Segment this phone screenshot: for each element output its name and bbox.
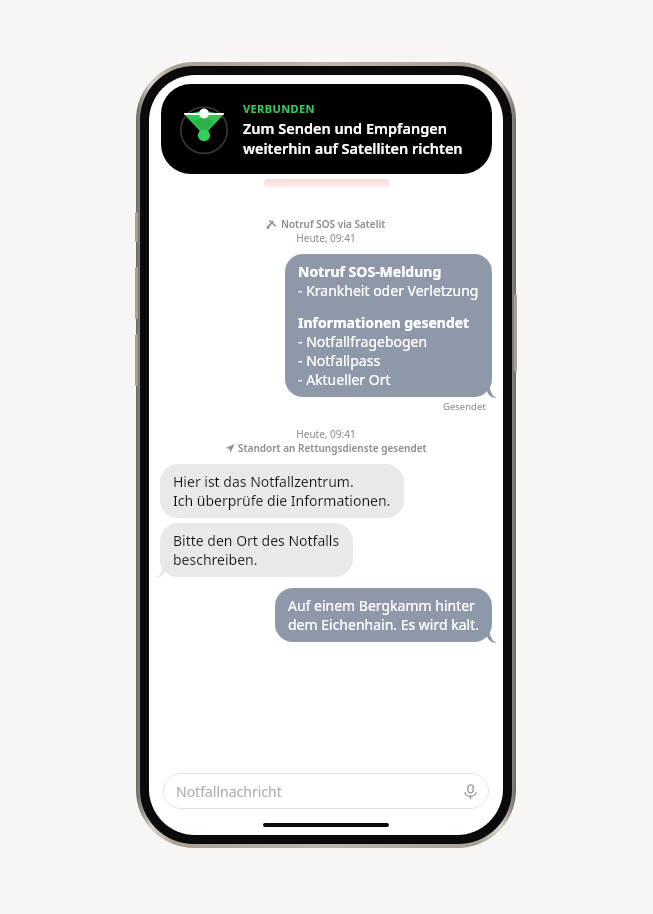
staticText: Heute, 09:41 bbox=[160, 231, 492, 245]
staticText: - Notfallpass bbox=[298, 351, 381, 370]
button[interactable]: Bitte den Ort des Notfalls bbox=[160, 523, 353, 577]
button[interactable]: Notruf SOS-Meldung bbox=[285, 254, 492, 397]
staticText: Gesendet bbox=[443, 400, 486, 413]
button[interactable]: VERBUNDEN bbox=[161, 84, 492, 174]
staticText: Auf einem Bergkamm hinter bbox=[288, 596, 475, 615]
staticText: - Notfallfragebogen bbox=[298, 332, 428, 351]
staticText: Standort an Rettungsdienste gesendet bbox=[238, 441, 427, 455]
staticText: Heute, 09:41 bbox=[160, 427, 492, 441]
staticText: dem Eichenhain. Es wird kalt. bbox=[288, 615, 479, 634]
staticText: - Krankheit oder Verletzung bbox=[298, 281, 479, 300]
button[interactable]: Hier ist das Notfallzentrum. bbox=[160, 464, 404, 518]
button[interactable]: Notfallnachricht bbox=[163, 773, 489, 809]
staticText: Bitte den Ort des Notfalls bbox=[173, 531, 340, 550]
staticText: VERBUNDEN bbox=[243, 101, 315, 116]
staticText: Notruf SOS-Meldung bbox=[298, 262, 442, 281]
button[interactable]: Diktieren bbox=[457, 778, 483, 804]
staticText: Zum Senden und Empfangen bbox=[243, 118, 447, 138]
staticText: beschreiben. bbox=[173, 550, 258, 569]
staticText: Ich überprüfe die Informationen. bbox=[173, 491, 391, 510]
staticText: Notfallnachricht bbox=[176, 782, 457, 801]
staticText: weiterhin auf Satelliten richten bbox=[243, 138, 463, 158]
staticText: Notruf SOS via Satelit bbox=[281, 217, 386, 231]
staticText: Informationen gesendet bbox=[298, 313, 470, 332]
staticText: - Aktueller Ort bbox=[298, 370, 391, 389]
staticText: Hier ist das Notfallzentrum. bbox=[173, 472, 354, 491]
button[interactable]: Auf einem Bergkamm hinter bbox=[275, 588, 492, 642]
